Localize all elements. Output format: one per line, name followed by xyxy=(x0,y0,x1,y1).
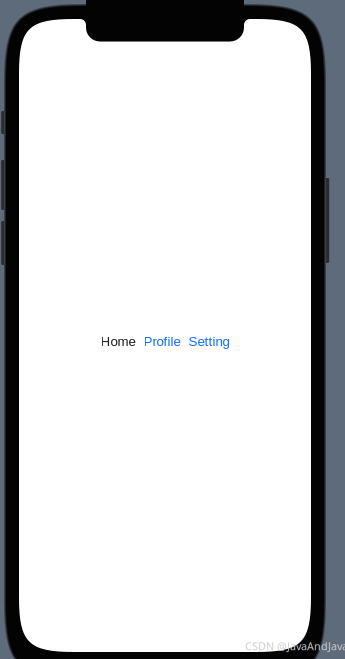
staticText: CSDN @JavaAndJava xyxy=(245,639,345,653)
button[interactable]: Setting xyxy=(188,334,229,349)
staticText: Home xyxy=(100,334,135,349)
button[interactable]: Home xyxy=(100,334,135,349)
button[interactable]: Profile xyxy=(143,334,180,349)
staticText: Profile xyxy=(143,334,180,349)
staticText: Setting xyxy=(188,334,229,349)
